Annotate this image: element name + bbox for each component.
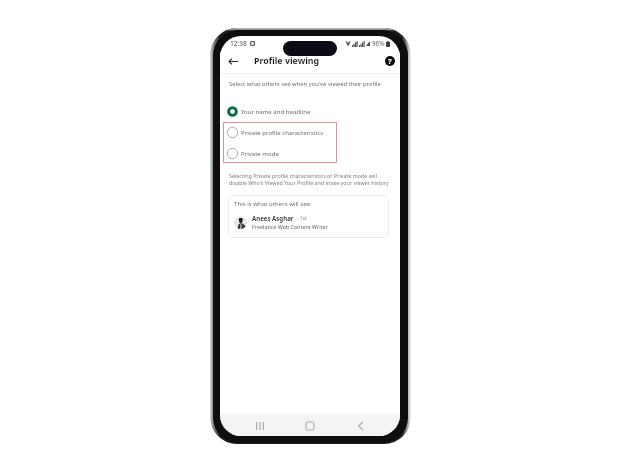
staticText: Freelance Web Content Writer: [252, 223, 328, 230]
button[interactable]: Help: [383, 54, 397, 68]
staticText: Your name and headline: [241, 108, 311, 116]
staticText: This is what others will see:: [234, 199, 312, 207]
button[interactable]: Back: [224, 53, 241, 70]
button[interactable]: Recents: [252, 418, 268, 434]
staticText: Select what others see when you've viewe…: [229, 80, 381, 88]
staticText: 96%: [372, 39, 385, 48]
staticText: Profile viewing: [254, 55, 320, 67]
button[interactable]: Home: [302, 418, 318, 434]
staticText: Private profile characteristics: [241, 129, 324, 137]
staticText: Private mode: [241, 150, 279, 158]
staticText: · 1st: [297, 215, 307, 222]
button[interactable]: Back: [352, 418, 368, 434]
button[interactable]: Your name and headline: [220, 101, 400, 122]
staticText: 12:38: [230, 39, 247, 48]
staticText: ?: [388, 56, 392, 66]
staticText: Selecting Private profile characteristic…: [229, 172, 392, 187]
button[interactable]: Private profile characteristics: [220, 122, 400, 143]
staticText: Anees Asghar: [252, 214, 294, 222]
button[interactable]: This is what others will see:: [228, 195, 389, 238]
button[interactable]: Private mode: [220, 143, 400, 164]
